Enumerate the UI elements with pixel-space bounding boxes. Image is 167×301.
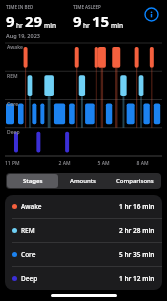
button[interactable]: Core (5, 243, 162, 266)
staticText: Stages (23, 177, 43, 185)
staticText: min (44, 21, 56, 30)
staticText: Deep (21, 274, 38, 283)
staticText: Awake (21, 202, 42, 211)
staticText: 9 (6, 11, 15, 31)
staticText: Core (21, 250, 36, 259)
staticText: min (111, 21, 123, 30)
button[interactable]: Comparisons (109, 174, 160, 188)
staticText: hr (83, 21, 90, 30)
staticText: 2 hr 28 min (119, 226, 155, 235)
button[interactable]: REM (5, 219, 162, 242)
staticText: REM (21, 226, 35, 235)
staticText: 29 (25, 11, 43, 31)
button[interactable]: Amounts (58, 174, 109, 188)
staticText: 15 (92, 11, 110, 31)
staticText: TIME IN BED (6, 4, 34, 10)
staticText: Comparisons (116, 177, 154, 185)
button[interactable]: Deep (5, 267, 162, 290)
staticText: Amounts (70, 177, 97, 185)
staticText: 8 AM (123, 160, 162, 167)
button[interactable]: Stages (7, 174, 58, 188)
staticText: 9 (73, 11, 82, 31)
staticText: 1 hr 16 min (119, 202, 155, 211)
staticText: TIME ASLEEP (73, 4, 101, 10)
button[interactable]: Awake (5, 195, 162, 218)
staticText: 5 AM (84, 160, 123, 167)
staticText: Aug 19, 2023 (6, 32, 40, 39)
staticText: hr (16, 21, 23, 30)
staticText: 11 PM (5, 160, 45, 167)
staticText: 1 hr 12 min (119, 274, 155, 283)
staticText: 5 hr 35 min (119, 250, 155, 259)
staticText: Deep (7, 129, 20, 136)
staticText: Core (7, 101, 19, 108)
staticText: Awake (7, 44, 23, 51)
button[interactable]: Information (141, 4, 161, 24)
staticText: REM (7, 73, 18, 80)
staticText: 2 AM (45, 160, 84, 167)
